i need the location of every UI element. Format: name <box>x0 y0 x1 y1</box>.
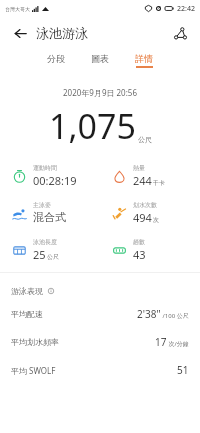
staticText: 平均 SWOLF <box>11 365 56 376</box>
staticText: 494 <box>133 210 152 225</box>
staticText: 泳池長度 <box>33 238 57 246</box>
staticText: 圖表 <box>91 53 109 64</box>
button[interactable]: 熱量 <box>100 164 200 188</box>
staticText: 公尺 <box>47 253 59 261</box>
staticText: 43 <box>133 247 146 262</box>
staticText: 1,075 <box>49 103 136 149</box>
button[interactable]: 詳情 <box>132 53 156 68</box>
button[interactable]: 分段 <box>44 53 68 68</box>
button[interactable]: 圖表 <box>88 53 112 68</box>
button[interactable]: 平均配速 <box>0 300 200 328</box>
staticText: 244 <box>133 173 152 188</box>
button[interactable]: 平均 SWOLF <box>0 356 200 384</box>
staticText: 詳情 <box>135 53 153 64</box>
staticText: 趟數 <box>133 238 145 246</box>
staticText: /100 公尺 <box>161 312 189 320</box>
staticText: 2'38" <box>137 307 161 321</box>
staticText: 22:42 <box>177 4 195 14</box>
staticText: 主泳姿 <box>33 201 51 209</box>
staticText: 分段 <box>47 53 65 64</box>
button[interactable]: 平均划水頻率 <box>0 328 200 356</box>
staticText: 混合式 <box>33 210 66 224</box>
staticText: 平均配速 <box>11 309 43 319</box>
button[interactable]: Share <box>169 22 191 44</box>
button[interactable]: 划水次數 <box>100 201 200 225</box>
button[interactable]: 運動時間 <box>0 164 100 188</box>
staticText: 2020年9月9日 20:56 <box>0 87 200 98</box>
staticText: 千卡 <box>153 179 165 187</box>
button[interactable]: 主泳姿 <box>0 201 100 224</box>
staticText: 台灣大哥大 <box>5 6 30 12</box>
staticText: 25 <box>33 247 46 262</box>
button[interactable]: Back <box>9 22 31 44</box>
staticText: 17 <box>155 335 167 349</box>
button[interactable]: 泳池長度 <box>0 238 100 262</box>
staticText: 划水次數 <box>133 201 157 209</box>
staticText: 00:28:19 <box>33 173 77 188</box>
staticText: 次/分鐘 <box>167 340 189 348</box>
staticText: 游泳表現 <box>11 286 43 296</box>
button[interactable]: Info <box>46 286 55 295</box>
staticText: 運動時間 <box>33 164 57 172</box>
button[interactable]: 趟數 <box>100 238 200 262</box>
staticText: 公尺 <box>138 135 152 144</box>
staticText: 泳池游泳 <box>36 25 88 41</box>
staticText: 51 <box>177 363 189 377</box>
staticText: 次 <box>153 216 159 224</box>
staticText: 熱量 <box>133 164 145 172</box>
staticText: 平均划水頻率 <box>11 337 59 347</box>
